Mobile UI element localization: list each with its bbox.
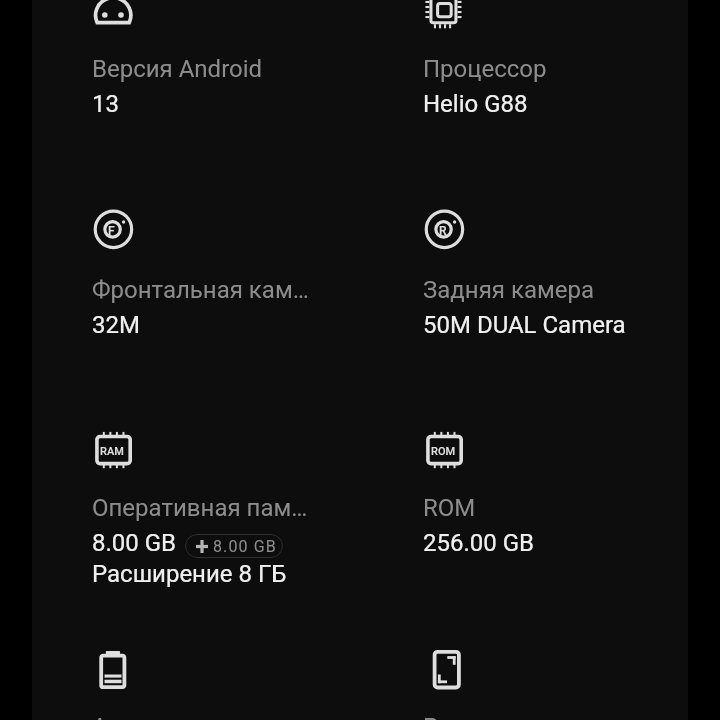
staticText: Расширение 8 ГБ [92, 560, 287, 588]
button[interactable]: Rear camera [423, 213, 691, 339]
button[interactable]: Processor [423, 0, 691, 118]
staticText: Фронтальная кам… [92, 276, 309, 304]
staticText: R [439, 224, 447, 238]
staticText: Размер экрана [423, 713, 593, 720]
staticText: 50M DUAL Camera [423, 311, 626, 339]
other: ROM [425, 431, 465, 471]
staticText: Версия Android [92, 55, 263, 83]
staticText: 13 [92, 90, 119, 118]
other: RAM [94, 431, 134, 471]
staticText: Процессор [423, 55, 547, 83]
staticText: RAM [100, 445, 124, 458]
other: Android version [94, 0, 134, 32]
staticText: Задняя камера [423, 276, 595, 304]
other: Rear camera [425, 213, 465, 253]
staticText: Оперативная пам… [92, 494, 308, 522]
staticText: ROM [431, 445, 456, 458]
button[interactable]: RAM [92, 431, 360, 588]
other: Front camera [94, 213, 134, 253]
staticText: 32M [92, 311, 140, 339]
staticText: Helio G88 [423, 90, 528, 118]
staticText: Аккумулятор [92, 713, 239, 720]
button[interactable]: Screen [423, 650, 691, 720]
staticText: 8.00 GB [92, 529, 177, 557]
other: Battery [94, 650, 134, 690]
staticText: 256.00 GB [423, 529, 535, 557]
button[interactable]: Android version [92, 0, 360, 118]
button[interactable]: Battery [92, 650, 360, 720]
button[interactable]: Front camera [92, 213, 360, 339]
staticText: ROM [423, 494, 476, 522]
staticText: 8.00 GB [213, 537, 277, 556]
staticText: F [108, 224, 115, 238]
button[interactable]: ROM [423, 431, 691, 557]
other: Screen [425, 650, 465, 690]
other: Processor [425, 0, 465, 32]
